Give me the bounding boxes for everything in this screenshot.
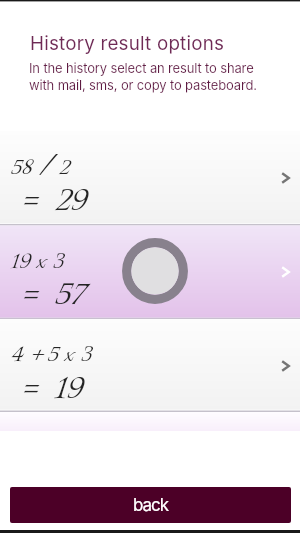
button[interactable]: back [10,487,291,523]
staticText: In the history select an result to share… [29,60,257,93]
button[interactable] [0,412,300,431]
staticText: 19 x 3 [10,242,63,283]
staticText: = 57 [21,266,85,326]
staticText: History result options [30,32,225,55]
button[interactable] [0,132,300,225]
staticText: back [133,495,169,516]
staticText: = 19 [21,360,82,420]
other: Selected [122,238,188,304]
button[interactable] [0,319,300,412]
button[interactable] [0,226,300,319]
staticText: 58 / 2 [10,148,70,189]
staticText: = 29 [21,172,86,232]
staticText: 4 + 5 x 3 [10,335,92,376]
